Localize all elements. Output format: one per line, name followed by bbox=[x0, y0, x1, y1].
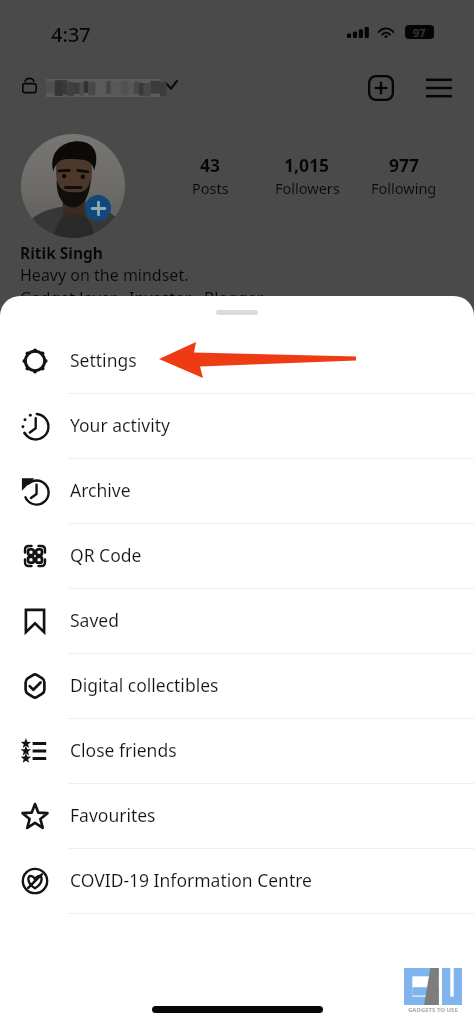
staticText: Following bbox=[371, 178, 437, 198]
staticText: QR Code bbox=[70, 543, 142, 567]
staticText: 1,015 bbox=[284, 153, 330, 177]
staticText: 97 bbox=[413, 25, 426, 39]
staticText: Settings bbox=[70, 348, 137, 372]
staticText: Ritik Singh bbox=[20, 242, 103, 263]
button[interactable]: 1,015 bbox=[257, 153, 357, 198]
staticText: Your activity bbox=[70, 413, 170, 437]
staticText: Posts bbox=[192, 178, 229, 198]
staticText: Close friends bbox=[70, 738, 177, 762]
staticText: Archive bbox=[70, 478, 131, 502]
button[interactable]: Your activity bbox=[0, 394, 474, 459]
button[interactable]: Close friends bbox=[0, 719, 474, 784]
staticText: COVID-19 Information Centre bbox=[70, 868, 312, 892]
button[interactable]: QR Code bbox=[0, 524, 474, 589]
staticText: 43 bbox=[200, 153, 221, 177]
button[interactable]: COVID-19 Information Centre bbox=[0, 849, 474, 914]
staticText: Heavy on the mindset. bbox=[20, 264, 189, 286]
button[interactable]: Add to story bbox=[85, 195, 111, 221]
staticText: Gadget lover . Investor . Blogger bbox=[20, 287, 264, 309]
button[interactable]: Settings bbox=[0, 329, 474, 394]
staticText: GADGETS TO USE bbox=[408, 1006, 458, 1014]
staticText: 4:37 bbox=[51, 21, 91, 48]
staticText: Digital collectibles bbox=[70, 673, 219, 697]
staticText: Favourites bbox=[70, 803, 156, 827]
button[interactable]: Favourites bbox=[0, 784, 474, 849]
staticText: 977 bbox=[389, 153, 420, 177]
button[interactable]: Menu bbox=[423, 72, 455, 104]
staticText: Saved bbox=[70, 608, 119, 632]
button[interactable]: Create bbox=[364, 71, 398, 105]
button[interactable] bbox=[21, 134, 125, 238]
staticText: Followers bbox=[275, 178, 340, 198]
button[interactable]: 43 bbox=[160, 153, 260, 198]
button[interactable]: Digital collectibles bbox=[0, 654, 474, 719]
button[interactable]: Saved bbox=[0, 589, 474, 654]
button[interactable]: Archive bbox=[0, 459, 474, 524]
button[interactable]: 977 bbox=[354, 153, 454, 198]
